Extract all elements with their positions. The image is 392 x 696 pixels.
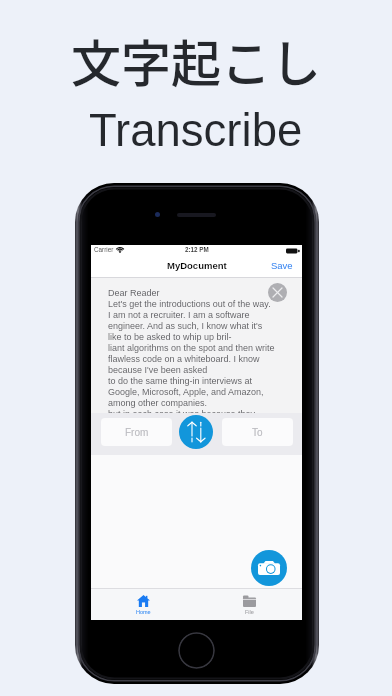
staticText: To [252, 427, 263, 438]
staticText: Home [136, 609, 151, 615]
button[interactable]: Home [91, 589, 196, 620]
staticText: Save [271, 260, 293, 271]
staticText: Transcribe [89, 105, 303, 156]
button[interactable]: From [101, 418, 172, 446]
button[interactable]: To [222, 418, 293, 446]
button[interactable]: Camera [251, 550, 287, 586]
button[interactable]: File [196, 589, 302, 620]
staticText: From [125, 427, 149, 438]
staticText: File [245, 609, 254, 615]
staticText: Dear Reader Let's get the introductions … [108, 288, 275, 413]
staticText: 文字起こし [71, 24, 321, 96]
button[interactable]: Close [268, 283, 287, 302]
staticText: Carrier [94, 246, 114, 253]
button[interactable]: Swap direction [179, 415, 213, 449]
staticText: MyDocument [167, 260, 227, 271]
button[interactable]: Save [262, 258, 302, 273]
staticText: 2:12 PM [185, 246, 209, 253]
